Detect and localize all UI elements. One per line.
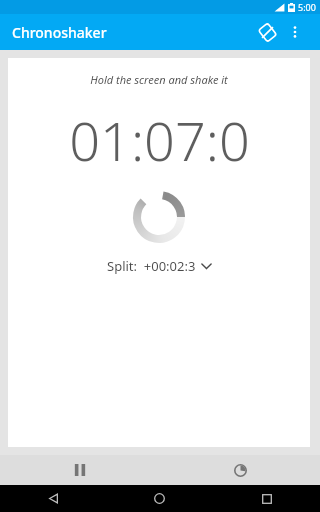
button[interactable]: More options [282, 19, 308, 45]
button[interactable]: Screen rotation lock [252, 17, 282, 47]
button[interactable]: Pause [0, 455, 160, 485]
button[interactable]: Split: +00:02:3 [99, 255, 220, 277]
staticText: Hold the screen and shake it [90, 72, 228, 87]
button[interactable]: Recent apps [213, 485, 320, 512]
button[interactable]: Back [0, 485, 106, 512]
staticText: Chronoshaker [12, 23, 107, 42]
staticText: 5:00 [298, 1, 316, 13]
button[interactable]: Lap [160, 455, 320, 485]
staticText: Split: +00:02:3 [107, 257, 196, 275]
staticText: 01:07:0 [69, 103, 250, 177]
button[interactable]: Home [106, 485, 213, 512]
